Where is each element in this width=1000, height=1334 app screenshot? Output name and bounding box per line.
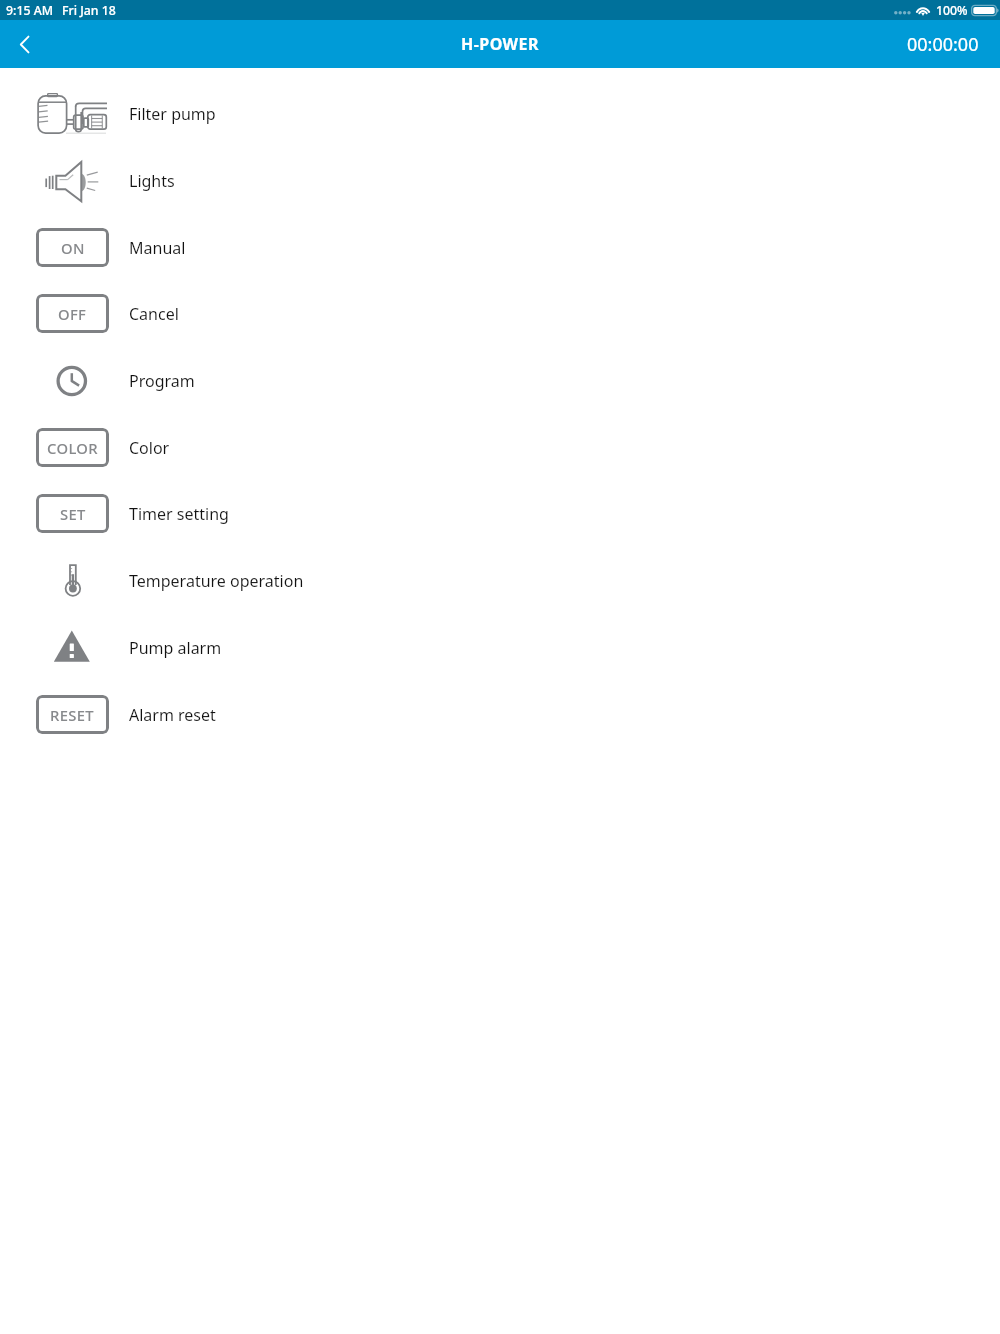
staticText: OFF bbox=[58, 304, 87, 324]
staticText: Color bbox=[129, 437, 170, 459]
other: Filter pump bbox=[37, 93, 107, 134]
staticText: Alarm reset bbox=[129, 704, 216, 726]
staticText: Cancel bbox=[129, 303, 179, 325]
other: Program bbox=[55, 364, 89, 398]
button[interactable]: COLOR bbox=[0, 414, 1000, 481]
staticText: Program bbox=[129, 370, 195, 392]
staticText: 00:00:00 bbox=[907, 32, 979, 57]
staticText: 9:15 AM bbox=[6, 2, 53, 19]
staticText: SET bbox=[60, 504, 86, 524]
button[interactable]: OFF bbox=[36, 294, 109, 333]
staticText: Filter pump bbox=[129, 103, 216, 125]
button[interactable]: RESET bbox=[36, 695, 109, 734]
staticText: H-POWER bbox=[461, 33, 539, 55]
staticText: Pump alarm bbox=[129, 637, 222, 659]
other: Temperature operation bbox=[64, 559, 82, 603]
staticText: Manual bbox=[129, 237, 186, 259]
other: Pump alarm bbox=[52, 629, 92, 667]
button[interactable]: Filter pump bbox=[0, 80, 1000, 147]
button[interactable]: ON bbox=[36, 228, 109, 267]
other: Lights bbox=[44, 159, 100, 203]
staticText: Fri Jan 18 bbox=[62, 2, 116, 19]
button[interactable]: Temperature operation bbox=[0, 547, 1000, 614]
button[interactable]: Program bbox=[0, 347, 1000, 414]
staticText: COLOR bbox=[47, 438, 99, 458]
button[interactable]: Back bbox=[0, 20, 48, 68]
button[interactable]: SET bbox=[0, 480, 1000, 547]
button[interactable]: COLOR bbox=[36, 428, 109, 467]
staticText: Temperature operation bbox=[129, 570, 304, 592]
staticText: Lights bbox=[129, 170, 175, 192]
button[interactable]: RESET bbox=[0, 681, 1000, 748]
staticText: 100% bbox=[936, 2, 968, 19]
button[interactable]: Pump alarm bbox=[0, 614, 1000, 681]
button[interactable]: ON bbox=[0, 214, 1000, 281]
staticText: Timer setting bbox=[129, 503, 229, 525]
button[interactable]: OFF bbox=[0, 280, 1000, 347]
staticText: RESET bbox=[50, 705, 95, 725]
button[interactable]: SET bbox=[36, 494, 109, 533]
staticText: ON bbox=[61, 238, 85, 258]
button[interactable]: Lights bbox=[0, 147, 1000, 214]
